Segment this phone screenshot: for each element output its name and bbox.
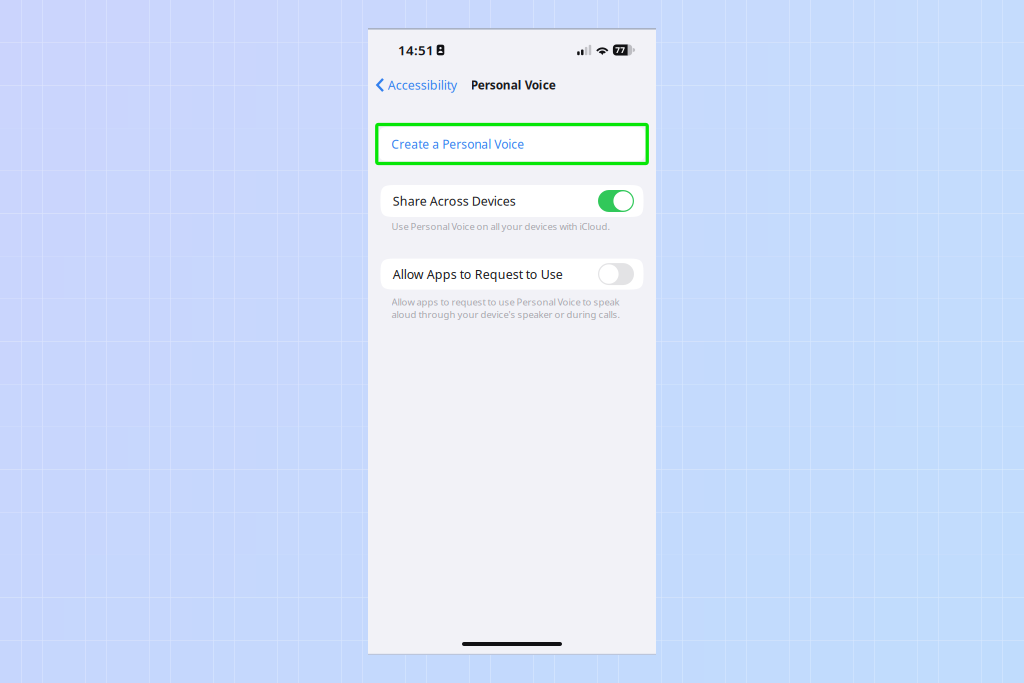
staticText: Use Personal Voice on all your devices w… — [392, 220, 611, 233]
staticText: 77 — [615, 44, 625, 55]
staticText: Accessibility — [388, 77, 457, 93]
staticText: Share Across Devices — [393, 193, 516, 209]
button[interactable]: Create a Personal Voice — [379, 127, 645, 161]
button[interactable]: Share Across Devices — [380, 185, 643, 217]
staticText: Allow Apps to Request to Use — [393, 266, 563, 282]
staticText: Personal Voice — [471, 77, 556, 93]
staticText: Create a Personal Voice — [391, 136, 524, 152]
staticText: Allow apps to request to use Personal Vo… — [392, 296, 621, 321]
staticText: 14:51 — [398, 41, 434, 59]
button[interactable]: Accessibility — [368, 72, 460, 98]
button[interactable]: Allow Apps to Request to Use — [380, 259, 643, 290]
